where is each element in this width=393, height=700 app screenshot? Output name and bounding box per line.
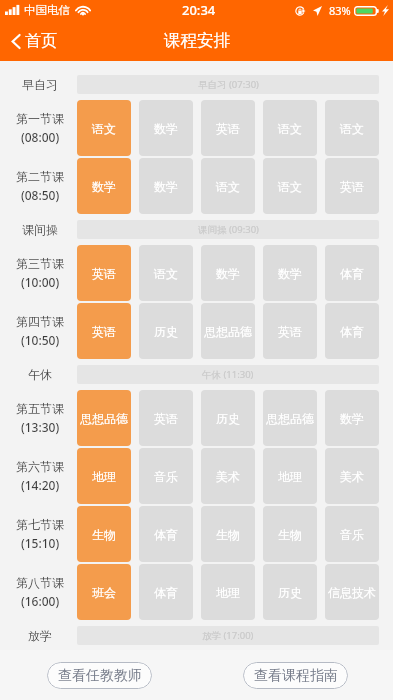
button[interactable]: 体育 — [139, 506, 193, 562]
button[interactable]: 英语 — [77, 303, 131, 359]
staticText: 音乐 — [340, 527, 364, 542]
button[interactable]: 美术 — [201, 448, 255, 504]
button[interactable]: 课间操 (09:30) — [77, 220, 379, 239]
staticText: 课程安排 — [164, 30, 230, 51]
staticText: 中国电信 — [24, 3, 70, 17]
button[interactable]: 语文 — [77, 100, 131, 156]
staticText: 美术 — [216, 469, 240, 484]
button[interactable]: 思想品德 — [201, 303, 255, 359]
button[interactable]: 历史 — [263, 564, 317, 620]
button[interactable]: 英语 — [77, 245, 131, 301]
button[interactable]: 地理 — [201, 564, 255, 620]
staticText: 数学 — [340, 411, 364, 426]
staticText: 语文 — [278, 121, 302, 136]
button[interactable]: 语文 — [201, 158, 255, 214]
button[interactable]: 英语 — [201, 100, 255, 156]
button[interactable]: 历史 — [201, 390, 255, 446]
staticText: 语文 — [340, 121, 364, 136]
staticText: 语文 — [154, 266, 178, 281]
staticText: 英语 — [92, 324, 116, 339]
button[interactable]: 地理 — [263, 448, 317, 504]
staticText: 午休 (11:30) — [202, 368, 254, 381]
button[interactable]: 英语 — [263, 303, 317, 359]
button[interactable]: 历史 — [139, 303, 193, 359]
button[interactable]: 数学 — [139, 158, 193, 214]
staticText: 第三节课 — [16, 256, 64, 271]
button[interactable]: 午休 (11:30) — [77, 365, 379, 384]
button[interactable]: 语文 — [139, 245, 193, 301]
staticText: 第七节课 — [16, 517, 64, 532]
staticText: (16:00) — [21, 593, 60, 609]
button[interactable]: 英语 — [325, 158, 379, 214]
staticText: 地理 — [92, 469, 116, 484]
other: Location — [312, 6, 322, 16]
button[interactable]: 美术 — [325, 448, 379, 504]
staticText: 数学 — [278, 266, 302, 281]
staticText: (10:00) — [21, 274, 60, 290]
staticText: 数学 — [154, 179, 178, 194]
staticText: 历史 — [278, 585, 302, 600]
button[interactable]: 体育 — [325, 303, 379, 359]
staticText: 体育 — [154, 527, 178, 542]
staticText: 历史 — [216, 411, 240, 426]
staticText: (13:30) — [21, 419, 60, 435]
button[interactable]: 数学 — [263, 245, 317, 301]
staticText: 体育 — [340, 324, 364, 339]
button[interactable]: 音乐 — [325, 506, 379, 562]
staticText: 体育 — [340, 266, 364, 281]
staticText: 查看任教教师 — [58, 667, 142, 685]
button[interactable]: 语文 — [325, 100, 379, 156]
staticText: 英语 — [154, 411, 178, 426]
button[interactable]: 音乐 — [139, 448, 193, 504]
staticText: 首页 — [25, 31, 57, 51]
staticText: 美术 — [340, 469, 364, 484]
staticText: 思想品德 — [80, 411, 128, 426]
staticText: 第五节课 — [16, 401, 64, 416]
staticText: (10:50) — [21, 332, 60, 348]
button[interactable]: 首页 — [0, 25, 67, 57]
staticText: 早自习 (07:30) — [198, 78, 259, 91]
button[interactable]: 查看任教教师 — [47, 662, 152, 689]
button[interactable]: 思想品德 — [263, 390, 317, 446]
button[interactable]: 生物 — [77, 506, 131, 562]
staticText: 历史 — [154, 324, 178, 339]
button[interactable]: 查看课程指南 — [243, 662, 348, 689]
button[interactable]: 生物 — [263, 506, 317, 562]
staticText: 语文 — [216, 179, 240, 194]
staticText: 英语 — [278, 324, 302, 339]
staticText: 思想品德 — [266, 411, 314, 426]
button[interactable]: 放学 (17:00) — [77, 626, 379, 645]
staticText: 第四节课 — [16, 314, 64, 329]
button[interactable]: 体育 — [139, 564, 193, 620]
button[interactable]: 数学 — [325, 390, 379, 446]
button[interactable]: 英语 — [139, 390, 193, 446]
button[interactable]: 班会 — [77, 564, 131, 620]
button[interactable]: 思想品德 — [77, 390, 131, 446]
staticText: 生物 — [278, 527, 302, 542]
staticText: 体育 — [154, 585, 178, 600]
staticText: 第六节课 — [16, 459, 64, 474]
staticText: 83% — [329, 3, 351, 18]
staticText: (08:50) — [21, 187, 60, 203]
staticText: 第八节课 — [16, 575, 64, 590]
staticText: 英语 — [340, 179, 364, 194]
staticText: 查看课程指南 — [254, 667, 338, 685]
staticText: 地理 — [278, 469, 302, 484]
staticText: 信息技术 — [328, 585, 376, 600]
button[interactable]: 生物 — [201, 506, 255, 562]
button[interactable]: 体育 — [325, 245, 379, 301]
button[interactable]: 数学 — [139, 100, 193, 156]
button[interactable]: 数学 — [201, 245, 255, 301]
staticText: 语文 — [92, 121, 116, 136]
button[interactable]: 语文 — [263, 158, 317, 214]
staticText: 午休 — [28, 367, 52, 382]
staticText: 思想品德 — [204, 324, 252, 339]
button[interactable]: 语文 — [263, 100, 317, 156]
button[interactable]: 地理 — [77, 448, 131, 504]
staticText: 音乐 — [154, 469, 178, 484]
button[interactable]: 信息技术 — [325, 564, 379, 620]
button[interactable]: 早自习 (07:30) — [77, 75, 379, 94]
staticText: 放学 (17:00) — [202, 629, 254, 642]
button[interactable]: 数学 — [77, 158, 131, 214]
staticText: (08:00) — [21, 129, 60, 145]
